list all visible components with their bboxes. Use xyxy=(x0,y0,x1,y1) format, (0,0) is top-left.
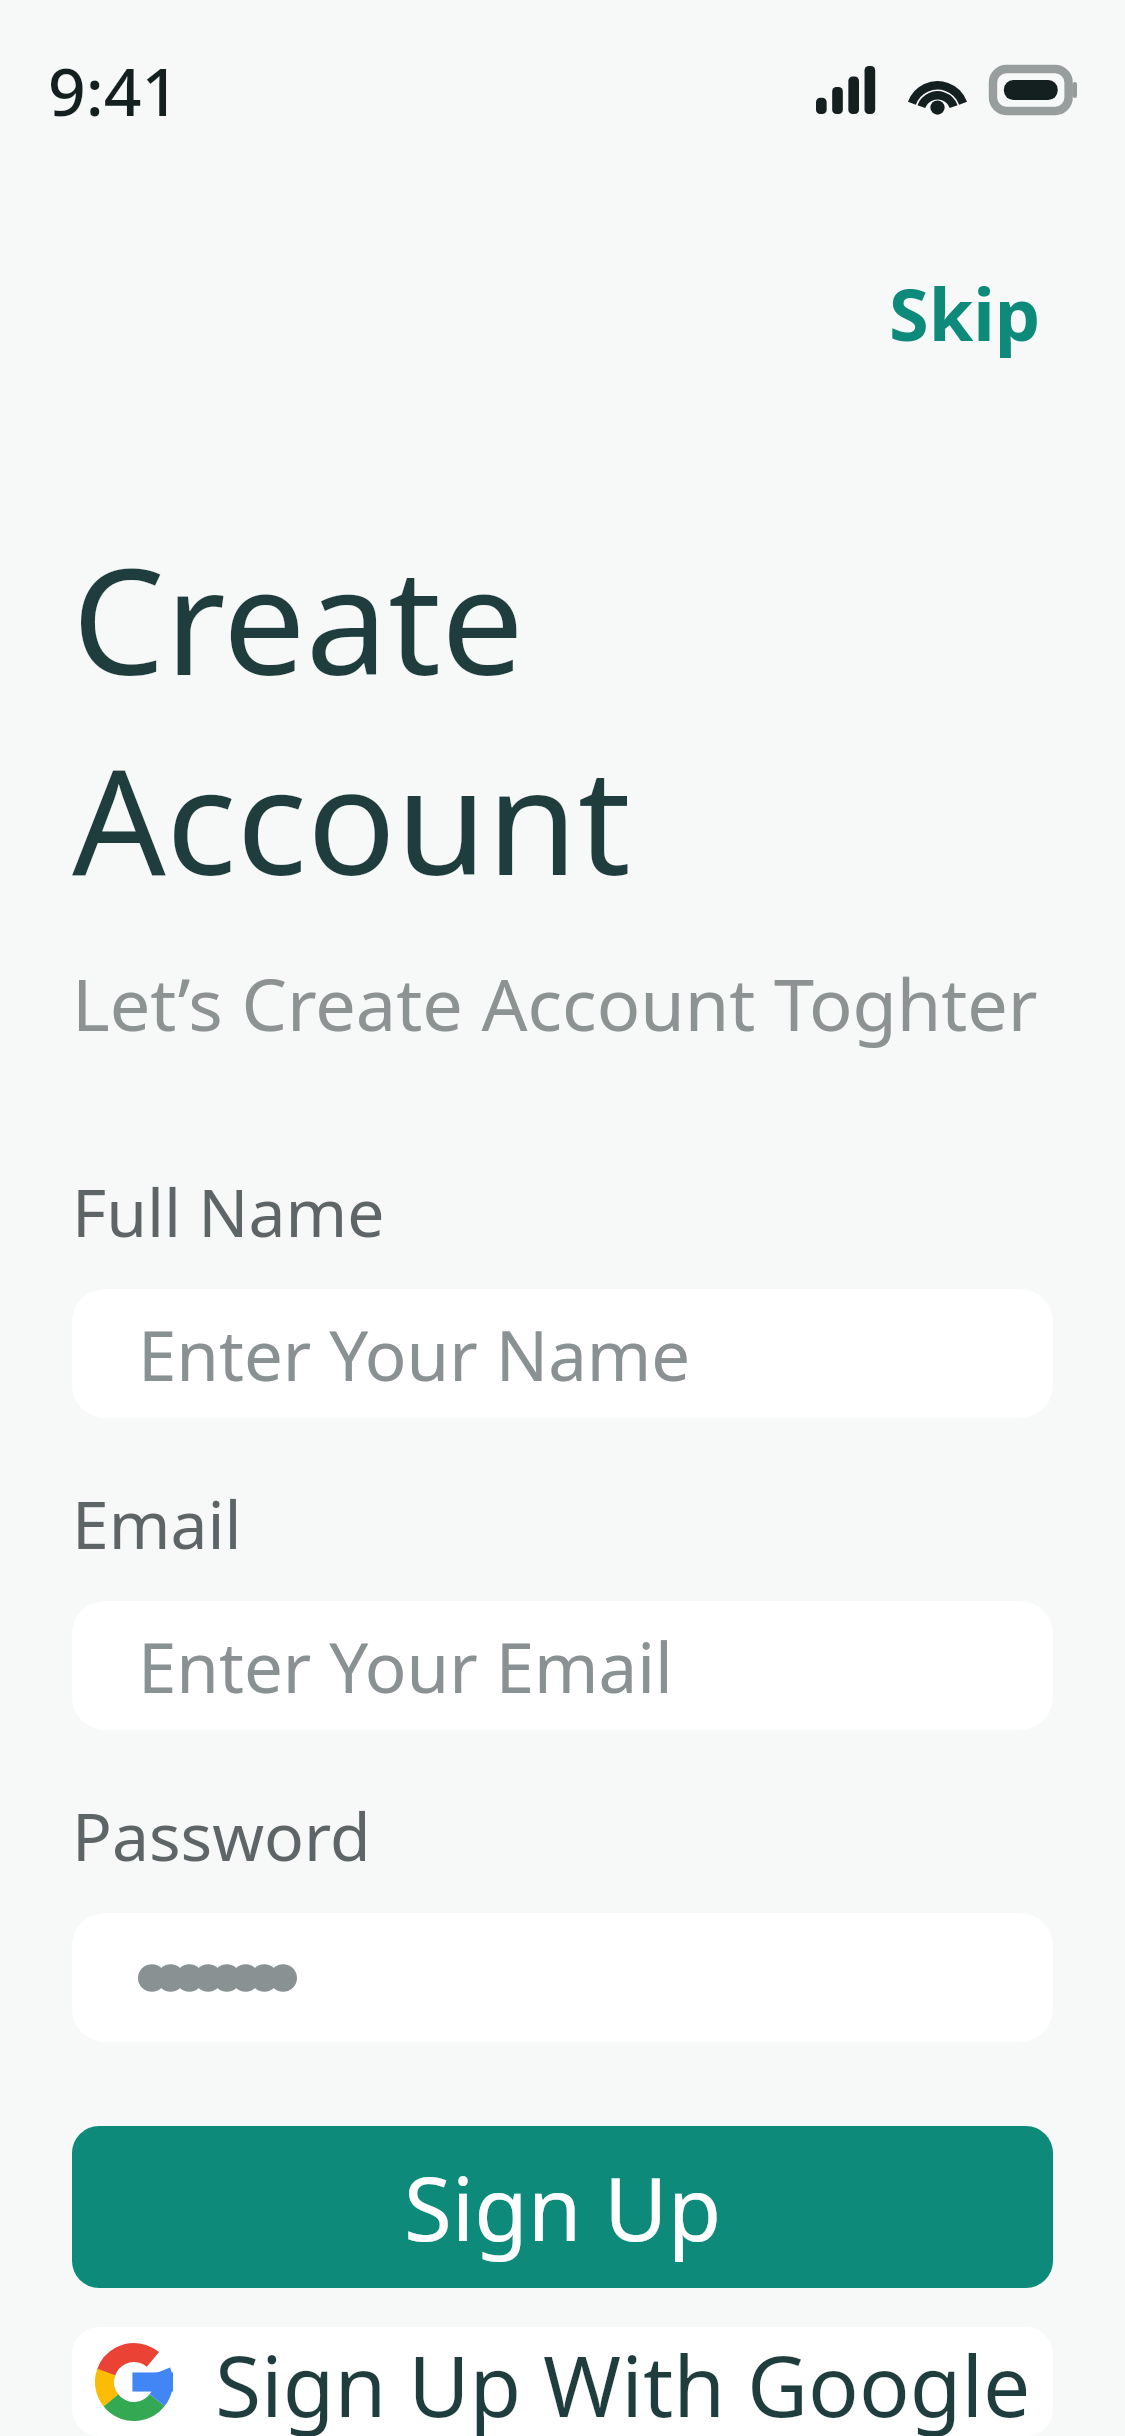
button[interactable]: Enter Your Name xyxy=(72,1289,1053,1418)
staticText: Enter Your Name xyxy=(138,1307,691,1401)
staticText: 9:41 xyxy=(48,45,180,135)
staticText: Skip xyxy=(889,264,1041,362)
button[interactable]: Skip xyxy=(865,246,1065,380)
staticText: Password xyxy=(72,1790,371,1880)
button[interactable]: Sign Up xyxy=(72,2126,1053,2288)
staticText: Sign Up With Google xyxy=(215,2327,1031,2436)
staticText: Let’s Create Account Toghter xyxy=(72,954,1038,1052)
staticText: Sign Up xyxy=(404,2148,722,2266)
button[interactable]: Sign Up With Google xyxy=(72,2327,1053,2436)
button[interactable] xyxy=(72,1913,1053,2042)
button[interactable]: Enter Your Email xyxy=(72,1601,1053,1730)
staticText: Create Account xyxy=(72,518,1053,918)
staticText: Enter Your Email xyxy=(138,1619,673,1713)
staticText: Full Name xyxy=(72,1166,385,1256)
staticText: Email xyxy=(72,1478,242,1568)
